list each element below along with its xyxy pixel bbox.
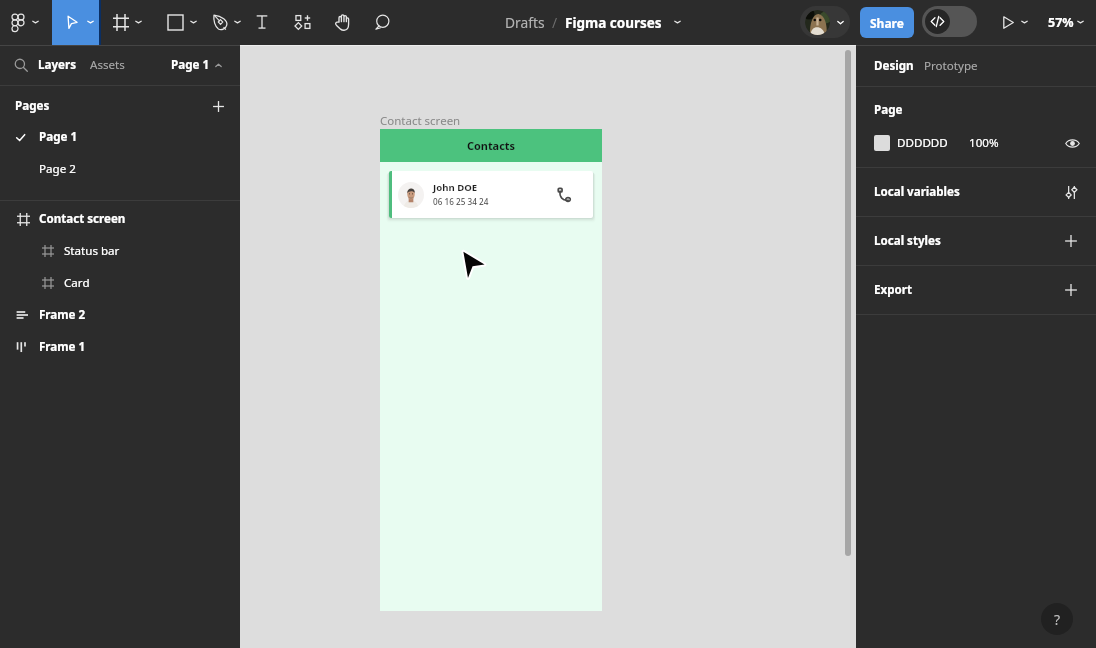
button[interactable]: Hand tool (329, 2, 357, 42)
button[interactable]: Dev mode (922, 6, 977, 37)
button[interactable]: John DOE (389, 171, 593, 218)
staticText: Contact screen (380, 113, 461, 129)
staticText: Local variables (874, 184, 960, 200)
staticText: Status bar (64, 243, 120, 259)
staticText: Pages (15, 98, 50, 114)
staticText: Contacts (467, 138, 515, 153)
button[interactable]: Move tool options (82, 7, 98, 37)
button[interactable]: Present options (1016, 7, 1032, 37)
button[interactable]: Help (1041, 603, 1073, 635)
staticText: 06 16 25 34 24 (433, 196, 489, 207)
button[interactable]: Status bar (0, 235, 240, 267)
staticText: / (552, 13, 558, 32)
button[interactable]: Move tool (52, 0, 99, 45)
staticText: Contact screen (39, 211, 126, 227)
button[interactable]: Page 1 (0, 121, 240, 153)
button[interactable]: Card (0, 267, 240, 299)
button[interactable]: Move tool (59, 2, 85, 42)
button[interactable]: Local styles (856, 217, 1096, 265)
button[interactable]: Layers (38, 57, 76, 73)
button[interactable]: File options (668, 7, 686, 37)
staticText: Share (870, 15, 904, 31)
button[interactable]: Contact screen (0, 203, 240, 235)
button[interactable]: Page color (874, 135, 890, 151)
staticText: 100% (969, 135, 999, 151)
button[interactable]: Components (289, 2, 317, 42)
button[interactable]: Present (996, 2, 1020, 42)
button[interactable]: Pen tool options (229, 7, 245, 37)
button[interactable]: Toggle visibility (1063, 134, 1081, 152)
staticText: ? (1054, 610, 1061, 629)
staticText: Page (874, 102, 903, 118)
button[interactable]: Add page (209, 97, 227, 115)
button[interactable]: Export (856, 266, 1096, 314)
button[interactable]: Figma menu (5, 5, 31, 39)
staticText: Page 1 (171, 57, 210, 73)
button[interactable]: Drafts (505, 13, 545, 32)
staticText: John DOE (433, 181, 478, 194)
staticText: Frame 1 (39, 339, 86, 355)
staticText: Export (874, 282, 912, 298)
button[interactable]: Assets (90, 57, 125, 73)
button[interactable]: Pen tool (208, 2, 234, 42)
button[interactable]: Design (874, 58, 914, 74)
button[interactable]: Text tool (248, 2, 276, 42)
button[interactable]: Shape tool (162, 2, 188, 42)
button[interactable]: Frame 2 (0, 299, 240, 331)
button[interactable]: Call (552, 183, 576, 207)
staticText: Local styles (874, 233, 941, 249)
button[interactable]: Account (800, 6, 850, 38)
button[interactable]: Frame tool options (130, 7, 146, 37)
staticText: Page 2 (39, 161, 76, 177)
button[interactable]: Shape tool options (185, 7, 201, 37)
button[interactable]: Figma menu options (27, 7, 43, 37)
button[interactable]: 57% (1040, 0, 1082, 45)
button[interactable]: Zoom options (1072, 7, 1088, 37)
button[interactable]: Figma courses (565, 14, 662, 32)
button[interactable]: Prototype (924, 58, 978, 74)
staticText: 57% (1048, 14, 1074, 31)
button[interactable]: Page 1 (171, 57, 226, 73)
button[interactable]: Local variables (856, 168, 1096, 216)
staticText: Card (64, 275, 90, 291)
button[interactable]: Frame 1 (0, 331, 240, 363)
staticText: DDDDDD (897, 135, 948, 151)
staticText: Page 1 (39, 129, 78, 145)
staticText: Frame 2 (39, 307, 86, 323)
button[interactable]: Comment (368, 2, 396, 42)
button[interactable]: Frame tool (108, 2, 134, 42)
button[interactable]: Page 2 (0, 153, 240, 185)
button[interactable]: Share (860, 7, 914, 38)
